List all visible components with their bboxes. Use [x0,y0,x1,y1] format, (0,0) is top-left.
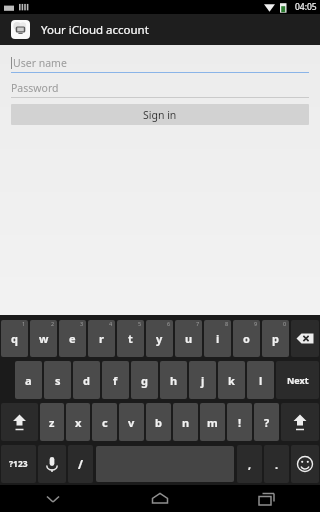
staticText: f [113,373,118,388]
staticText: y [156,331,163,346]
button[interactable]: j [189,361,216,399]
staticText: User name [13,56,67,70]
staticText: 04:05 [295,1,317,13]
button[interactable]: Sign in [11,104,309,125]
staticText: m [207,415,218,430]
button[interactable]: Delete [291,320,319,357]
button[interactable]: n [173,403,198,441]
button[interactable]: ! [227,403,252,441]
staticText: e [69,331,76,346]
button[interactable]: Next [276,361,319,399]
staticText: d [83,373,90,388]
button[interactable]: Recent apps [213,485,320,512]
button[interactable]: Emoji [291,445,319,483]
button[interactable]: d [73,361,100,399]
button[interactable]: r [88,320,115,357]
staticText: g [141,373,148,388]
button[interactable]: Shift [1,403,38,441]
staticText: b [155,415,162,430]
staticText: q [11,331,18,346]
button[interactable]: ?123 [1,445,36,483]
button[interactable]: q [1,320,28,357]
staticText: ?123 [9,458,28,470]
button[interactable]: ? [254,403,279,441]
staticText: 7 [196,320,200,327]
staticText: c [102,415,108,430]
staticText: 0 [283,320,287,327]
button[interactable]: . [264,445,289,483]
button[interactable]: m [200,403,225,441]
button[interactable]: h [160,361,187,399]
staticText: v [128,415,135,430]
button[interactable]: o [233,320,260,357]
button[interactable]: l [247,361,274,399]
button[interactable]: u [175,320,202,357]
staticText: / [78,456,83,472]
button[interactable]: p [262,320,289,357]
staticText: Password [11,81,59,95]
staticText: , [248,457,252,472]
button[interactable]: w [30,320,57,357]
staticText: 8 [225,320,229,327]
button[interactable]: Home [106,485,213,512]
staticText: n [182,415,190,430]
button[interactable]: g [131,361,158,399]
button[interactable]: k [218,361,245,399]
button[interactable]: b [146,403,171,441]
staticText: s [55,373,61,388]
staticText: i [216,331,220,346]
staticText: j [201,373,205,388]
staticText: ! [238,415,242,430]
staticText: Sign in [143,108,177,122]
staticText: . [275,457,279,472]
button[interactable]: a [15,361,42,399]
staticText: 3 [80,320,84,327]
staticText: a [25,373,32,388]
button[interactable]: y [146,320,173,357]
staticText: 5 [138,320,142,327]
staticText: ? [264,415,270,430]
button[interactable]: s [44,361,71,399]
staticText: h [170,373,178,388]
button[interactable]: i [204,320,231,357]
staticText: 2 [51,320,55,327]
button[interactable]: , [237,445,262,483]
button[interactable]: v [119,403,144,441]
staticText: 6 [167,320,171,327]
staticText: l [259,373,263,388]
staticText: x [75,415,82,430]
button[interactable]: Voice input [38,445,66,483]
staticText: o [243,331,250,346]
button[interactable]: f [102,361,129,399]
staticText: k [228,373,235,388]
staticText: r [99,331,104,346]
staticText: u [185,331,193,346]
staticText: z [49,415,55,430]
staticText: w [39,331,49,346]
staticText: Your iCloud account [41,22,149,38]
button[interactable]: / [68,445,93,483]
button[interactable]: Hide keyboard [0,485,106,512]
button[interactable]: x [66,403,90,441]
staticText: Next [287,374,309,386]
button[interactable]: Shift [281,403,319,441]
button[interactable]: e [59,320,86,357]
button[interactable]: c [92,403,117,441]
staticText: 9 [254,320,258,327]
staticText: 4 [109,320,113,327]
button[interactable]: t [117,320,144,357]
button[interactable]: z [40,403,64,441]
staticText: 1 [22,320,26,327]
staticText: t [128,331,133,346]
staticText: p [272,331,279,346]
